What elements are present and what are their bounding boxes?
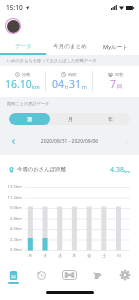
button[interactable]: 回数 [93,66,139,97]
staticText: 0.0km [9,247,22,253]
button[interactable]: 月 [50,113,90,125]
button[interactable]: 時間 [46,66,92,97]
button[interactable]: History [27,266,55,288]
staticText: 回数 [115,72,124,77]
button[interactable]: 週 [9,113,50,125]
staticText: 4.5km [9,226,22,232]
staticText: 7 [110,77,117,91]
button[interactable]: 今月のまとめ [47,40,93,53]
staticText: 期間ごとの累計データ [7,101,50,106]
staticText: 回 [117,83,123,90]
staticText: 火 [43,253,48,258]
button[interactable]: Myルート [93,40,139,53]
staticText: 水 [58,253,63,258]
staticText: 木 [72,253,77,258]
staticText: 土 [102,253,107,258]
staticText: 31 [69,77,82,91]
button[interactable]: データ [0,40,47,53]
staticText: 2020/08/31 - 2020/09/06 [26,138,113,145]
staticText: 9.0km [9,205,22,211]
staticText: 2.2km [9,237,22,243]
staticText: 距離 [22,72,31,77]
staticText: 今月のまとめ [53,43,88,50]
button[interactable]: Settings [111,266,139,288]
button[interactable]: Pet [83,266,111,288]
staticText: いぬのきもちを使っておさんぽした距離データ [7,58,97,63]
button[interactable]: Walk [55,266,83,288]
staticText: 11.2km [7,195,22,201]
staticText: 月 [68,116,73,122]
button[interactable]: Profile [5,18,21,34]
staticText: 6.8km [9,216,22,222]
button[interactable]: Previous period [0,134,26,148]
staticText: 15:10 [6,3,23,12]
staticText: 週 [27,116,32,122]
staticText: 4.38 [110,165,124,175]
staticText: Myルート [103,43,129,51]
staticText: データ [15,43,33,50]
staticText: 金 [87,253,92,258]
staticText: h [65,83,69,90]
button[interactable]: 距離 [0,66,45,97]
staticText: 日 [117,253,122,258]
staticText: 時間 [68,72,77,77]
staticText: 13.5km [7,184,22,190]
staticText: 今週のおさんぽ距離 [17,166,67,173]
staticText: km [124,169,131,175]
staticText: 月 [28,253,33,258]
staticText: 16.10 [5,77,32,91]
staticText: 04 [52,77,65,91]
staticText: km [32,83,40,90]
button[interactable]: Data [0,266,27,288]
staticText: m [82,83,87,90]
button[interactable]: 年 [90,113,130,125]
staticText: 年 [108,116,113,122]
